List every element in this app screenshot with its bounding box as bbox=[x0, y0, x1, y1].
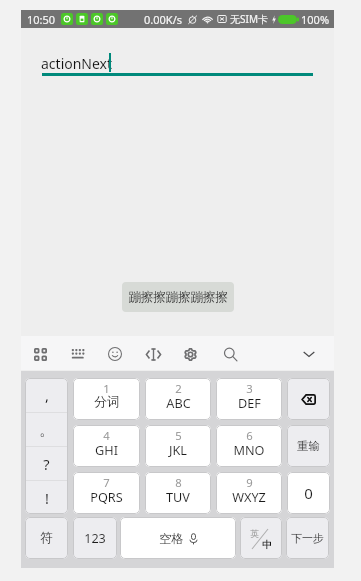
button[interactable]: 4 bbox=[73, 425, 140, 467]
button[interactable]: 8 bbox=[145, 472, 211, 514]
staticText: 。 bbox=[39, 421, 54, 439]
staticText: GHI bbox=[95, 441, 118, 458]
staticText: actionNext bbox=[41, 54, 113, 73]
button[interactable]: 123 bbox=[73, 517, 117, 559]
button[interactable]: 符 bbox=[25, 517, 68, 559]
button[interactable]: 9 bbox=[216, 472, 282, 514]
staticText: 英 bbox=[250, 528, 259, 539]
staticText: , bbox=[45, 385, 49, 405]
staticText: JKL bbox=[169, 441, 187, 458]
staticText: ABC bbox=[166, 394, 191, 411]
button[interactable]: , bbox=[25, 378, 68, 412]
staticText: TUV bbox=[166, 488, 190, 505]
button[interactable]: Search bbox=[215, 339, 245, 369]
button[interactable]: Hide keyboard bbox=[294, 339, 324, 369]
staticText: 5 bbox=[175, 428, 182, 443]
staticText: DEF bbox=[238, 394, 261, 411]
button[interactable]: 下一步 bbox=[286, 517, 329, 559]
button[interactable]: 0 bbox=[287, 472, 330, 514]
button[interactable]: 空格 bbox=[120, 517, 236, 559]
staticText: 9 bbox=[246, 475, 253, 490]
button[interactable]: Keyboard layouts bbox=[25, 339, 55, 369]
staticText: 4 bbox=[103, 428, 110, 443]
staticText: 7 bbox=[103, 475, 110, 490]
button[interactable]: 英中切换 bbox=[240, 517, 282, 559]
staticText: 0 bbox=[304, 483, 313, 503]
button[interactable]: ! bbox=[25, 481, 68, 514]
button[interactable]: Keyboard bbox=[63, 339, 93, 369]
staticText: 重输 bbox=[297, 439, 320, 453]
button[interactable]: Cursor control bbox=[138, 339, 168, 369]
staticText: 空格 bbox=[159, 531, 184, 546]
staticText: MNO bbox=[233, 441, 265, 458]
button[interactable]: ? bbox=[25, 447, 68, 480]
staticText: WXYZ bbox=[232, 488, 266, 505]
staticText: 无SIM卡 bbox=[230, 12, 268, 26]
staticText: 中 bbox=[262, 539, 272, 551]
staticText: 2 bbox=[175, 381, 182, 396]
button[interactable]: 。 bbox=[25, 413, 68, 446]
staticText: 符 bbox=[40, 530, 53, 546]
staticText: 100% bbox=[301, 12, 330, 27]
staticText: 3 bbox=[246, 381, 253, 396]
button[interactable]: Delete bbox=[287, 378, 330, 420]
staticText: ! bbox=[45, 488, 49, 508]
button[interactable]: 3 bbox=[216, 378, 282, 420]
staticText: 10:50 bbox=[27, 12, 56, 27]
staticText: 8 bbox=[175, 475, 182, 490]
staticText: 123 bbox=[84, 530, 106, 547]
staticText: 分词 bbox=[94, 394, 120, 410]
staticText: PQRS bbox=[90, 488, 123, 505]
button[interactable]: 7 bbox=[73, 472, 140, 514]
button[interactable]: Emoji bbox=[100, 339, 130, 369]
button[interactable]: Settings bbox=[175, 339, 205, 369]
button[interactable]: 1 bbox=[73, 378, 140, 420]
staticText: 0.00K/s bbox=[144, 12, 182, 27]
staticText: 1 bbox=[103, 381, 110, 396]
button[interactable]: 6 bbox=[216, 425, 282, 467]
staticText: 下一步 bbox=[291, 531, 324, 545]
button[interactable]: 重输 bbox=[287, 425, 330, 467]
staticText: 蹦擦擦蹦擦蹦擦擦 bbox=[128, 289, 228, 305]
staticText: 6 bbox=[246, 428, 253, 443]
staticText: ? bbox=[43, 454, 50, 474]
button[interactable]: 5 bbox=[145, 425, 211, 467]
button[interactable]: 2 bbox=[145, 378, 211, 420]
